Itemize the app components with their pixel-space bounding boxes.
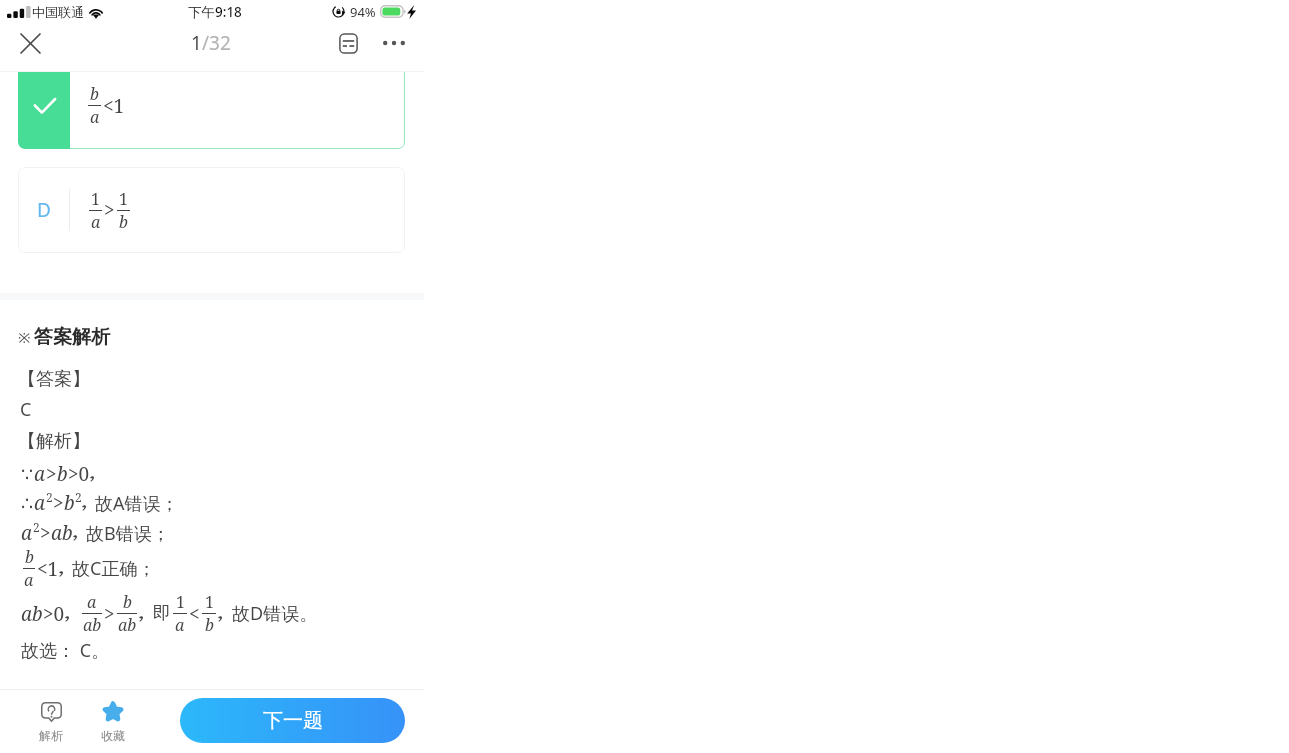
staticText: 1 <box>176 591 185 613</box>
staticText: 【解析】 <box>18 430 90 453</box>
staticText: ab <box>51 520 73 546</box>
staticText: ∴ <box>21 492 34 514</box>
staticText: 1 <box>191 30 202 56</box>
staticText: b <box>123 591 132 613</box>
staticText: a <box>90 106 100 128</box>
staticText: > <box>53 490 64 516</box>
staticText: a <box>175 614 185 636</box>
staticText: 1 <box>205 591 214 613</box>
staticText: ab <box>118 614 137 636</box>
staticText: <1 <box>103 93 125 119</box>
staticText: > <box>46 461 57 487</box>
staticText: > <box>40 520 51 546</box>
staticText: 中国联通 <box>32 4 84 20</box>
staticText: 故D错误。 <box>232 601 318 626</box>
staticText: 1 <box>119 188 128 210</box>
button[interactable]: Close <box>12 25 48 61</box>
button[interactable]: D <box>18 167 405 253</box>
staticText: > <box>104 197 115 223</box>
staticText: 94% <box>350 3 376 21</box>
staticText: <1 <box>37 556 59 582</box>
button[interactable]: More options <box>376 25 412 61</box>
button[interactable]: 下一题 <box>180 698 405 743</box>
staticText: b <box>64 490 75 516</box>
staticText: 即 <box>153 602 171 625</box>
staticText: /32 <box>202 30 231 56</box>
staticText: ※ <box>18 327 31 347</box>
staticText: 2 <box>46 489 53 505</box>
staticText: 收藏 <box>101 728 125 743</box>
staticText: a <box>21 520 33 546</box>
staticText: < <box>189 601 200 627</box>
staticText: C <box>20 397 32 422</box>
staticText: 下午9:18 <box>188 3 242 21</box>
staticText: 故B错误； <box>86 521 170 546</box>
staticText: a <box>24 569 34 591</box>
staticText: a <box>34 490 46 516</box>
staticText: a <box>91 211 101 233</box>
staticText: 故选： C。 <box>21 638 110 663</box>
staticText: 2 <box>75 489 82 505</box>
button[interactable]: b <box>18 72 405 149</box>
button[interactable]: Answer sheet <box>330 25 366 61</box>
staticText: 2 <box>33 519 40 535</box>
button[interactable]: 解析 <box>20 689 82 753</box>
button[interactable]: 收藏 <box>82 689 144 753</box>
staticText: b <box>57 461 68 487</box>
staticText: ab <box>83 614 102 636</box>
staticText: a <box>87 591 97 613</box>
staticText: ∵ <box>21 463 34 485</box>
staticText: b <box>90 83 99 105</box>
staticText: 【答案】 <box>18 368 90 391</box>
staticText: b <box>25 546 34 568</box>
staticText: 故C正确； <box>72 556 156 581</box>
staticText: 故A错误； <box>95 491 179 516</box>
staticText: 下一题 <box>263 708 323 733</box>
staticText: a <box>34 461 46 487</box>
staticText: 解析 <box>39 728 63 743</box>
staticText: D <box>37 197 51 223</box>
staticText: 答案解析 <box>34 325 110 349</box>
staticText: >0 <box>43 601 65 627</box>
staticText: >0 <box>68 461 90 487</box>
staticText: 1 <box>91 188 100 210</box>
staticText: b <box>205 614 214 636</box>
staticText: ab <box>21 601 43 627</box>
staticText: b <box>119 211 128 233</box>
staticText: > <box>104 601 115 627</box>
